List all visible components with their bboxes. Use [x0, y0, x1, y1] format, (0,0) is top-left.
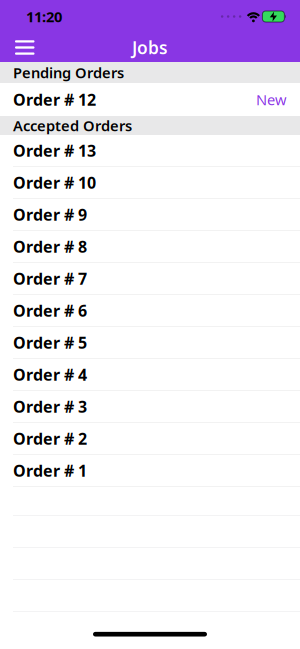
button[interactable]: Order # 2 [0, 423, 300, 455]
button[interactable]: Menu [0, 36, 34, 59]
button[interactable]: Order # 13 [0, 135, 300, 167]
staticText: Order # 8 [13, 236, 87, 257]
button[interactable]: Order # 9 [0, 199, 300, 231]
staticText: Order # 4 [13, 364, 87, 385]
staticText: Pending Orders [13, 63, 124, 82]
staticText: Order # 13 [13, 140, 96, 161]
button[interactable]: Order # 10 [0, 167, 300, 199]
staticText: Order # 6 [13, 300, 87, 321]
button[interactable]: Order # 7 [0, 263, 300, 295]
button[interactable]: Order # 6 [0, 295, 300, 327]
staticText: 11:20 [26, 7, 62, 26]
button[interactable]: Order # 4 [0, 359, 300, 391]
staticText: New [256, 90, 287, 109]
staticText: Order # 5 [13, 332, 87, 353]
staticText: Jobs [132, 36, 168, 59]
staticText: Accepted Orders [13, 116, 132, 135]
button[interactable]: Order # 3 [0, 391, 300, 423]
button[interactable]: Order # 1 [0, 455, 300, 487]
staticText: Order # 12 [13, 89, 96, 110]
staticText: Order # 2 [13, 428, 87, 449]
staticText: Order # 10 [13, 172, 96, 193]
button[interactable]: Order # 8 [0, 231, 300, 263]
button[interactable]: Order # 12 [0, 83, 300, 116]
staticText: Order # 3 [13, 396, 87, 417]
staticText: Order # 7 [13, 268, 87, 289]
staticText: Order # 9 [13, 204, 87, 225]
staticText: Order # 1 [13, 460, 87, 481]
button[interactable]: Order # 5 [0, 327, 300, 359]
